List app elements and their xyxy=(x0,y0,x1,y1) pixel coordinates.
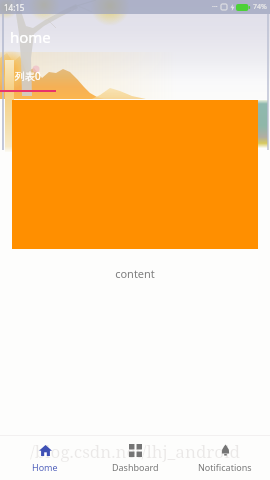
staticText: 列表0 xyxy=(15,69,41,83)
staticText: ··· xyxy=(212,2,218,12)
button[interactable]: Notifications xyxy=(180,436,270,480)
staticText: home xyxy=(10,27,51,47)
button[interactable]: Dashboard xyxy=(90,436,180,480)
staticText: Home xyxy=(32,461,58,473)
staticText: 14:15 xyxy=(4,2,25,13)
staticText: 74% xyxy=(253,2,267,12)
button[interactable]: 列表0 xyxy=(0,60,56,92)
staticText: Notifications xyxy=(198,461,252,473)
button[interactable]: Home xyxy=(0,436,90,480)
staticText: Dashboard xyxy=(112,461,159,473)
staticText: /blog.csdn.net/lhj_android xyxy=(0,440,270,463)
staticText: content xyxy=(0,266,270,281)
